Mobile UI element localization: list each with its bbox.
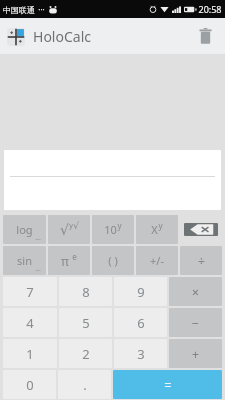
staticText: + [192, 346, 199, 362]
button[interactable] [4, 150, 221, 210]
staticText: 1 [26, 345, 34, 363]
button[interactable]: sin [3, 246, 46, 275]
staticText: 20:58 [198, 3, 222, 15]
staticText: ... [35, 264, 41, 274]
button[interactable]: log [3, 215, 46, 244]
button[interactable]: × [169, 277, 222, 306]
button[interactable]: 5 [59, 308, 112, 337]
button[interactable]: Square root [48, 215, 90, 244]
staticText: 4 [26, 314, 34, 332]
button[interactable]: ( ) [92, 246, 134, 275]
staticText: √ [73, 221, 79, 231]
staticText: = [164, 376, 172, 394]
staticText: 3 [137, 345, 145, 363]
button[interactable]: Equals [113, 370, 222, 399]
staticText: 0 [26, 376, 34, 394]
staticText: 中国联通 [3, 5, 35, 15]
staticText: 6 [137, 314, 145, 332]
staticText: sin [17, 253, 32, 268]
staticText: √ [60, 222, 69, 238]
staticText: y [158, 220, 163, 231]
button[interactable]: 0 [3, 370, 56, 399]
staticText: π [61, 253, 69, 269]
staticText: ( ) [108, 253, 118, 268]
staticText: 9 [137, 283, 145, 301]
staticText: ÷ [198, 253, 205, 269]
button[interactable]: 9 [114, 277, 167, 306]
button[interactable]: 10 [92, 215, 134, 244]
staticText: − [192, 315, 199, 331]
button[interactable]: Backspace [184, 223, 218, 236]
button[interactable]: X [136, 215, 178, 244]
button[interactable]: + [169, 339, 222, 368]
staticText: 5 [82, 314, 90, 332]
staticText: 2 [82, 345, 90, 363]
staticText: log [16, 222, 33, 237]
staticText: y [69, 221, 73, 231]
button[interactable]: − [169, 308, 222, 337]
staticText: e [72, 251, 77, 262]
button[interactable]: 6 [114, 308, 167, 337]
staticText: ··· [38, 4, 45, 15]
button[interactable]: 7 [3, 277, 57, 306]
button[interactable]: Clear history [193, 24, 217, 48]
staticText: X [151, 222, 158, 237]
button[interactable]: 3 [114, 339, 167, 368]
staticText: +/- [150, 253, 164, 268]
staticText: y [117, 220, 122, 231]
staticText: ... [35, 233, 41, 243]
button[interactable]: +/- [136, 246, 178, 275]
button[interactable]: 8 [59, 277, 112, 306]
button[interactable]: 1 [3, 339, 57, 368]
button[interactable]: Constants pi and e [48, 246, 90, 275]
staticText: . [83, 376, 87, 394]
button[interactable]: 2 [59, 339, 112, 368]
staticText: 8 [82, 283, 90, 301]
button[interactable]: ÷ [180, 246, 222, 275]
button[interactable]: 4 [3, 308, 57, 337]
staticText: HoloCalc [33, 27, 91, 46]
staticText: × [192, 284, 199, 300]
staticText: 7 [26, 283, 34, 301]
staticText: 10 [104, 222, 117, 237]
